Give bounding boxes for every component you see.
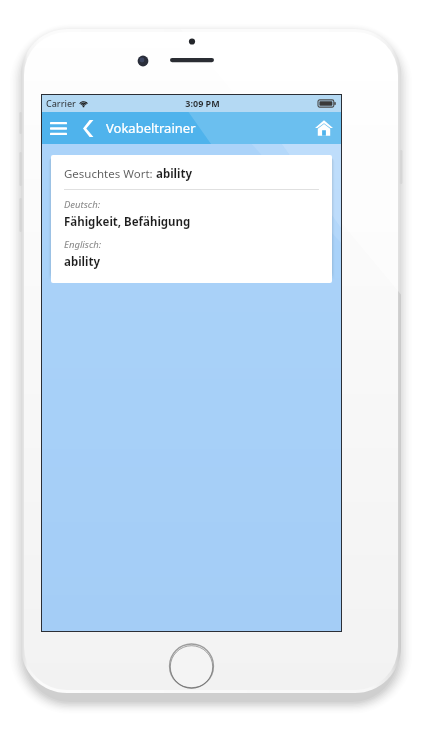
staticText: Englisch: — [64, 238, 102, 251]
button[interactable]: Menü — [41, 112, 75, 144]
button[interactable]: Gesuchtes Wort: — [51, 155, 332, 283]
button[interactable]: Zurück — [75, 112, 101, 144]
staticText: ability — [64, 254, 101, 270]
staticText: Carrier — [46, 97, 76, 109]
staticText: Vokabeltrainer — [106, 119, 196, 137]
staticText: Fähigkeit, Befähigung — [64, 214, 191, 230]
staticText: 3:09 PM — [185, 97, 220, 109]
button[interactable]: Startseite — [306, 112, 342, 144]
staticText: Deutsch: — [64, 198, 101, 211]
staticText: Gesuchtes Wort: — [64, 166, 156, 182]
staticText: ability — [156, 166, 193, 182]
